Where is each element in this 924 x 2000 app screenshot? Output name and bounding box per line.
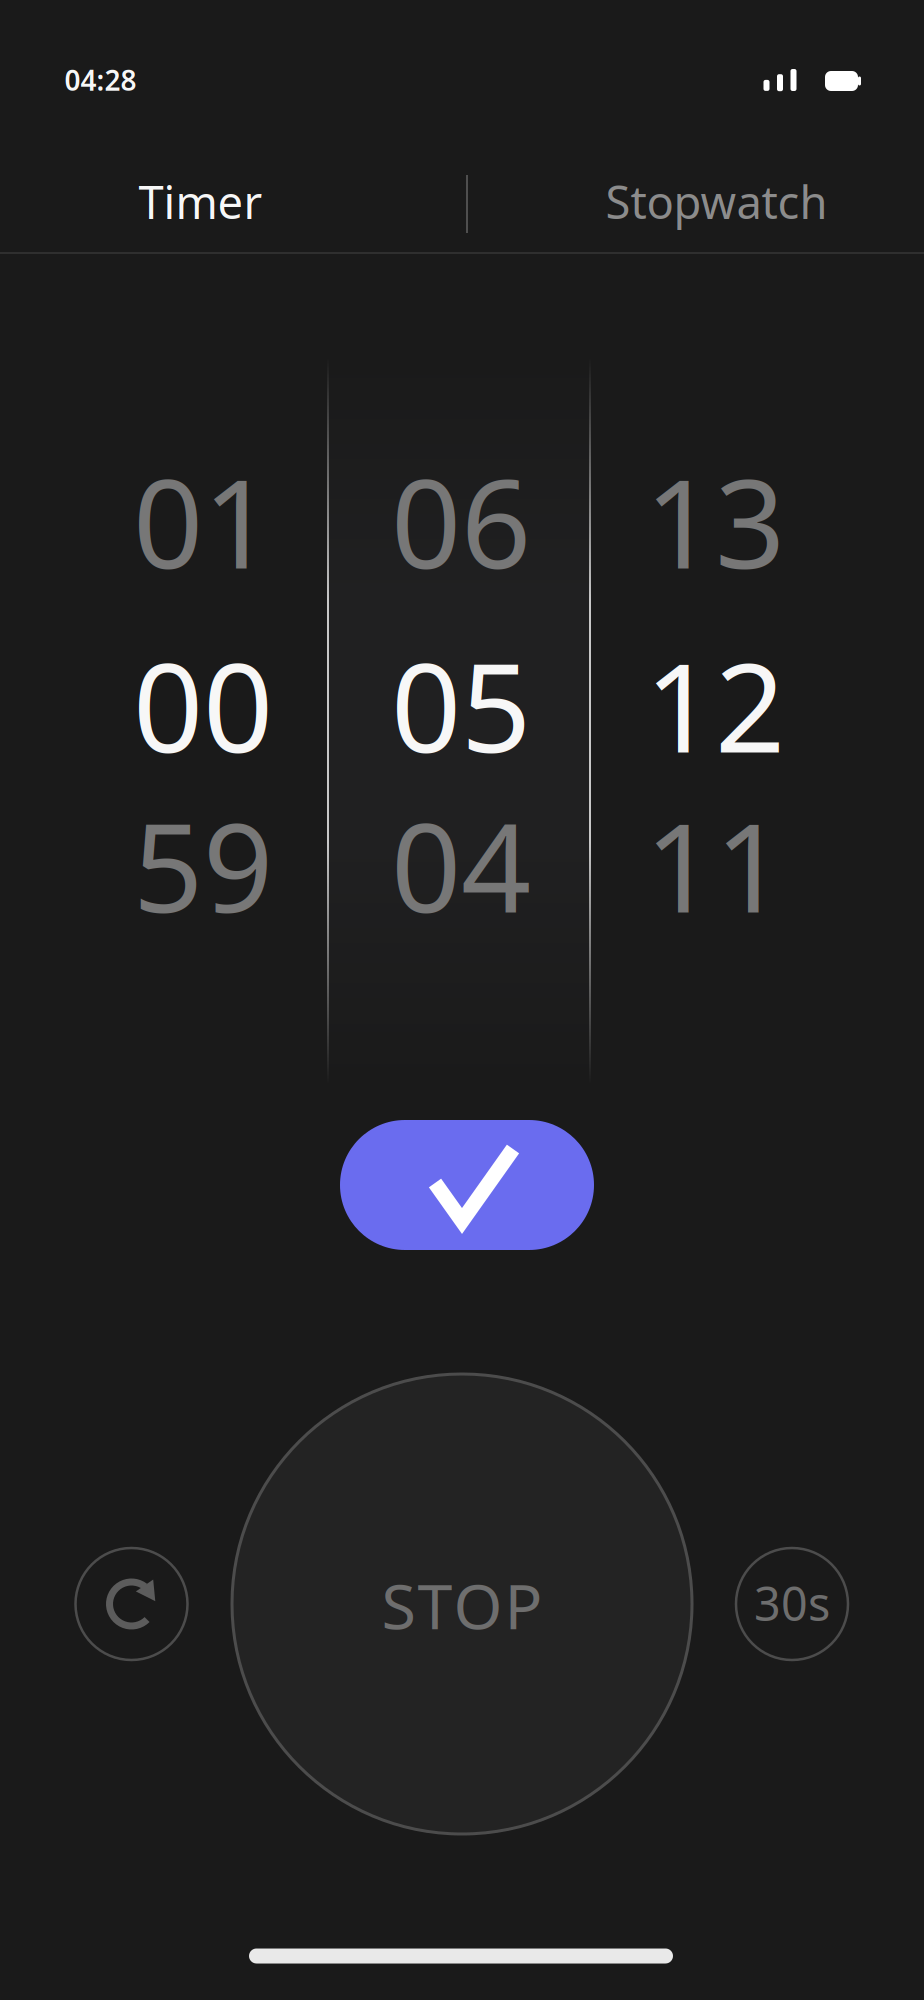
staticText: 01	[133, 440, 273, 602]
button[interactable]: Stopwatch	[546, 153, 886, 249]
staticText: 05	[391, 624, 531, 786]
staticText: 59	[133, 784, 273, 946]
staticText: 04	[391, 784, 531, 946]
staticText: STOP	[381, 1563, 542, 1647]
button[interactable]: Reset	[75, 1548, 187, 1660]
staticText: 06	[391, 440, 531, 602]
staticText: Timer	[138, 171, 262, 232]
button[interactable]: Timer	[30, 153, 370, 249]
staticText: 12	[645, 624, 785, 786]
staticText: 11	[645, 784, 785, 946]
staticText: 04:28	[64, 61, 136, 99]
staticText: 00	[133, 624, 273, 786]
staticText: 13	[645, 440, 785, 602]
button[interactable]: Confirm	[340, 1120, 594, 1250]
staticText: Stopwatch	[605, 171, 827, 232]
staticText: 30s	[754, 1572, 830, 1634]
button[interactable]: Add 30 seconds	[736, 1548, 848, 1660]
button[interactable]: STOP	[232, 1374, 692, 1834]
